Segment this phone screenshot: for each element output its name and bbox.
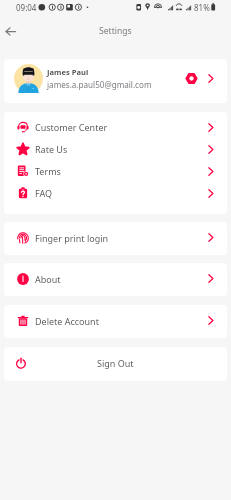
button[interactable]: Terms <box>4 160 227 182</box>
staticText: james.a.paul50@gmail.com <box>47 79 152 90</box>
staticText: Rate Us <box>35 143 68 155</box>
button[interactable]: Rate Us <box>4 138 227 160</box>
button[interactable]: James Paul <box>4 59 227 103</box>
button[interactable]: Sign Out <box>4 347 227 379</box>
staticText: Settings <box>99 25 132 37</box>
staticText: 09:04 <box>16 2 37 13</box>
button[interactable]: FAQ <box>4 182 227 204</box>
staticText: Delete Account <box>35 315 99 327</box>
button[interactable]: Delete Account <box>4 305 227 336</box>
staticText: 81% <box>194 2 210 13</box>
button[interactable]: Finger print login <box>4 222 227 253</box>
staticText: Customer Center <box>35 121 108 133</box>
staticText: About <box>35 273 61 285</box>
button[interactable]: Customer Center <box>4 116 227 138</box>
button[interactable]: About <box>4 263 227 294</box>
staticText: Finger print login <box>35 232 109 244</box>
staticText: James Paul <box>47 67 89 77</box>
staticText: Terms <box>35 165 61 177</box>
staticText: FAQ <box>35 187 53 199</box>
button[interactable]: Back <box>2 23 19 40</box>
button[interactable]: Account settings <box>186 73 197 84</box>
staticText: Sign Out <box>97 357 134 369</box>
